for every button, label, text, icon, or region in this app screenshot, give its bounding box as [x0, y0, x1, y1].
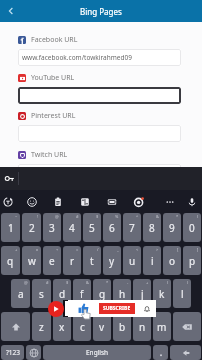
staticText: x	[59, 320, 65, 334]
staticText: [	[177, 247, 179, 252]
button[interactable]: p	[183, 246, 201, 275]
button[interactable]: Password	[2, 171, 17, 186]
button[interactable]: d	[53, 279, 71, 308]
staticText: *	[176, 214, 179, 219]
staticText: f	[80, 287, 84, 301]
button[interactable]	[18, 125, 181, 142]
button[interactable]: 3	[43, 213, 61, 242]
button[interactable]: Google Lens	[0, 193, 17, 211]
staticText: ^	[136, 214, 139, 219]
button[interactable]: Numbers	[103, 193, 121, 211]
button[interactable]: k	[153, 279, 171, 308]
staticText: ]	[197, 247, 199, 252]
staticText: www.facebook.com/towkirahmed09	[22, 53, 132, 62]
button[interactable]: f	[73, 279, 91, 308]
button[interactable]: 6	[103, 213, 121, 242]
button[interactable]: Sticker	[130, 193, 148, 211]
staticText: English	[86, 348, 109, 357]
staticText: 6	[109, 221, 115, 235]
button[interactable]: t	[83, 246, 101, 275]
button[interactable]	[18, 87, 181, 104]
staticText: s	[39, 287, 44, 301]
button[interactable]: m	[153, 312, 171, 341]
staticText: 4	[69, 221, 75, 235]
button[interactable]: a	[11, 279, 30, 308]
button[interactable]: x	[53, 312, 71, 341]
staticText: 0	[189, 221, 195, 235]
staticText: b	[119, 320, 126, 334]
staticText: r	[70, 254, 75, 268]
button[interactable]: www.facebook.com/towkirahmed09	[18, 49, 181, 66]
staticText: >	[156, 247, 159, 252]
button[interactable]: Shift	[1, 312, 30, 341]
staticText: $	[66, 280, 69, 285]
button[interactable]: English	[43, 345, 151, 360]
button[interactable]: Clipboard	[49, 193, 67, 211]
staticText: 8	[149, 221, 155, 235]
button[interactable]: v	[93, 312, 111, 341]
button[interactable]: 8	[143, 213, 161, 242]
button[interactable]: 4	[63, 213, 81, 242]
button[interactable]: Notifications	[141, 303, 152, 314]
button[interactable]: l	[173, 279, 191, 308]
button[interactable]: 1	[1, 213, 20, 242]
button[interactable]: h	[113, 279, 131, 308]
button[interactable]: q	[1, 246, 20, 275]
staticText: 1	[8, 221, 14, 235]
staticText: #	[46, 280, 49, 285]
staticText: g	[99, 287, 106, 301]
button[interactable]: 2	[22, 213, 41, 242]
button[interactable]: r	[63, 246, 81, 275]
staticText: y	[109, 254, 115, 268]
button[interactable]: Change language	[26, 345, 41, 360]
staticText: u	[129, 254, 136, 268]
staticText: l	[181, 287, 184, 301]
button[interactable]: Enter	[170, 345, 201, 360]
button[interactable]: i	[143, 246, 161, 275]
button[interactable]: More options	[161, 193, 179, 211]
staticText: w	[28, 254, 36, 268]
staticText: YouTube URL	[31, 73, 75, 83]
button[interactable]: g	[93, 279, 111, 308]
staticText: e	[49, 254, 55, 268]
staticText: #	[76, 214, 79, 219]
staticText: @	[24, 280, 28, 285]
button[interactable]: b	[113, 312, 131, 341]
button[interactable]: Period	[153, 345, 168, 360]
staticText: Facebook URL	[31, 35, 78, 45]
button[interactable]: u	[123, 246, 141, 275]
staticText: )	[187, 280, 189, 285]
button[interactable]: o	[163, 246, 181, 275]
button[interactable]: y	[103, 246, 121, 275]
button[interactable]: SUBSCRIBE	[99, 303, 135, 314]
button[interactable]: c	[73, 312, 91, 341]
button[interactable]: j	[133, 279, 151, 308]
staticText: h	[119, 287, 126, 301]
button[interactable]: Translate	[76, 193, 94, 211]
staticText: %	[115, 214, 119, 219]
button[interactable]: e	[43, 246, 61, 275]
button[interactable]: s	[32, 279, 51, 308]
staticText: @	[55, 214, 59, 219]
button[interactable]: 5	[83, 213, 101, 242]
button[interactable]: 0	[183, 213, 201, 242]
staticText: ?123	[6, 348, 20, 357]
staticText: SUBSCRIBE	[103, 305, 131, 312]
staticText: v	[99, 320, 105, 334]
button[interactable]: 7	[123, 213, 141, 242]
button[interactable]	[18, 164, 181, 181]
staticText: Pinterest URL	[31, 111, 76, 121]
button[interactable]: Voice input	[183, 193, 201, 211]
staticText: &	[156, 214, 159, 219]
button[interactable]: Emoji	[23, 193, 41, 211]
button[interactable]: w	[22, 246, 41, 275]
button[interactable]: SUBSCRIBE	[68, 300, 156, 317]
button[interactable]: Backspace	[173, 312, 201, 341]
staticText: c	[80, 320, 85, 334]
button[interactable]: Play	[48, 301, 64, 317]
button[interactable]: 9	[163, 213, 181, 242]
button[interactable]: n	[133, 312, 151, 341]
button[interactable]: z	[32, 312, 51, 341]
button[interactable]: ?123	[1, 345, 24, 360]
button[interactable]: Back	[0, 0, 22, 22]
